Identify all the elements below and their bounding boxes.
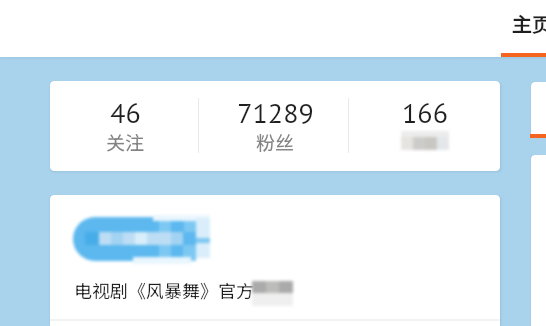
staticText: 主页 bbox=[512, 9, 546, 38]
staticText: 166 bbox=[402, 94, 448, 130]
button[interactable]: 主页 bbox=[496, 0, 546, 57]
button[interactable]: 46 bbox=[50, 81, 200, 171]
button[interactable]: 71289 bbox=[200, 81, 350, 171]
staticText: 46 bbox=[110, 94, 141, 130]
staticText: 粉丝 bbox=[256, 128, 295, 156]
button[interactable]: 电视剧《风暴舞》官方 bbox=[50, 195, 500, 326]
staticText: 71289 bbox=[237, 94, 314, 130]
staticText: 电视剧《风暴舞》官方 bbox=[74, 277, 254, 303]
button[interactable]: 166 bbox=[350, 81, 500, 171]
staticText: 关注 bbox=[106, 128, 145, 156]
